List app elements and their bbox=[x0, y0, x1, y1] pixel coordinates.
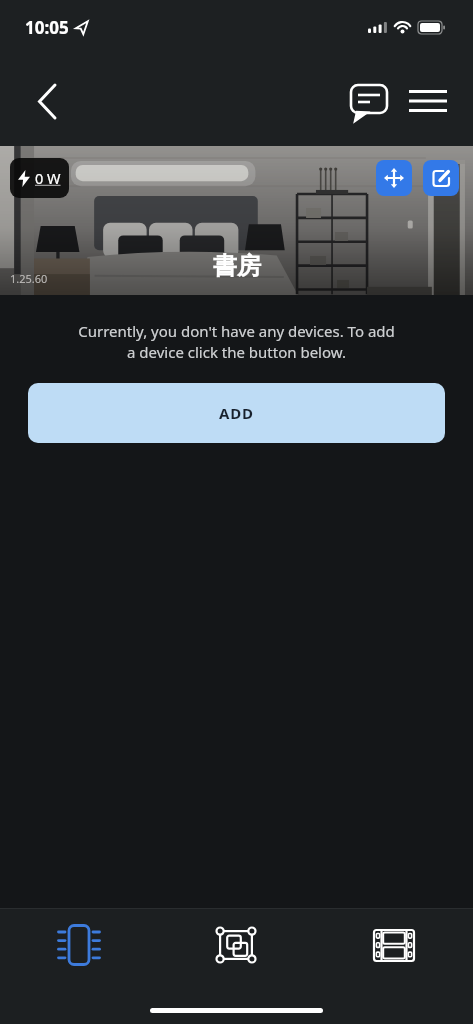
staticText: 書房 bbox=[213, 251, 261, 281]
staticText: ADD bbox=[219, 403, 254, 423]
button[interactable] bbox=[26, 81, 66, 121]
button[interactable] bbox=[0, 909, 157, 981]
button[interactable]: ADD bbox=[28, 383, 445, 443]
staticText: 0 W bbox=[35, 168, 61, 188]
button[interactable] bbox=[423, 160, 459, 196]
button[interactable] bbox=[315, 909, 473, 981]
staticText: 1.25.60 bbox=[10, 271, 48, 286]
button[interactable] bbox=[376, 160, 412, 196]
button[interactable] bbox=[348, 80, 390, 122]
button[interactable]: 0 W bbox=[10, 158, 69, 198]
staticText: 10:05 bbox=[25, 16, 69, 39]
staticText: Currently, you don't have any devices. T… bbox=[0, 321, 473, 363]
button[interactable] bbox=[157, 909, 315, 981]
button[interactable] bbox=[407, 80, 449, 122]
